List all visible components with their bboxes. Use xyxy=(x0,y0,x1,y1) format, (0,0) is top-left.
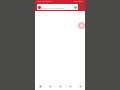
staticText: 1:09 24.5KB/s xyxy=(37,0,52,3)
button[interactable]: Cart xyxy=(55,83,65,90)
button[interactable]: Offers xyxy=(65,83,75,90)
button[interactable]: Account xyxy=(75,83,85,90)
button[interactable]: Search for products xyxy=(37,4,78,10)
button[interactable]: Categories xyxy=(45,83,55,90)
staticText: LTE 86% xyxy=(74,0,83,3)
button[interactable]: Home xyxy=(35,83,45,90)
staticText: Search for products xyxy=(42,6,65,9)
button[interactable]: Chat support xyxy=(78,22,85,29)
